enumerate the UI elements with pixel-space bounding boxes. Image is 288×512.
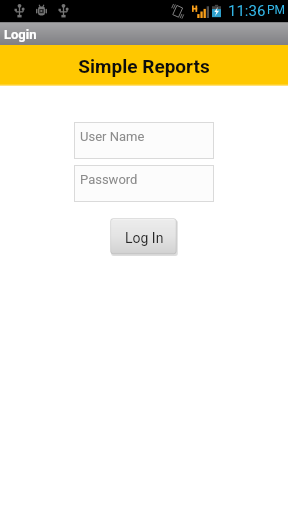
button[interactable]: Password [74, 165, 214, 202]
staticText: Login [4, 27, 37, 42]
staticText: User Name [80, 129, 145, 144]
staticText: Password [80, 172, 138, 187]
staticText: 11:36 [228, 2, 266, 20]
staticText: PM [267, 3, 286, 17]
staticText: Log In [125, 230, 164, 246]
button[interactable]: Log In [110, 218, 178, 256]
staticText: Simple Reports [78, 55, 210, 77]
button[interactable]: User Name [74, 122, 214, 159]
